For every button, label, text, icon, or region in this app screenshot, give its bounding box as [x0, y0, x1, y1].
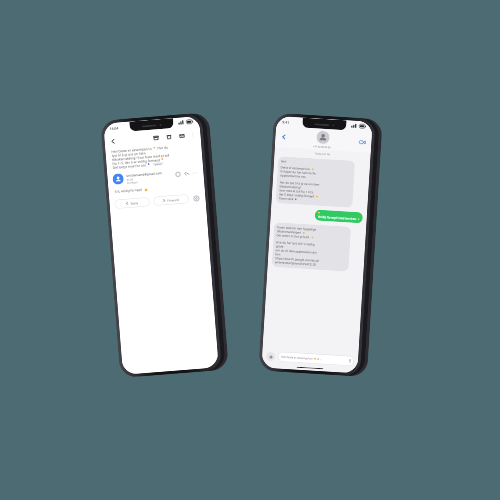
button[interactable]: Delete: [164, 132, 173, 141]
staticText: Det betyr mye for oss: [113, 162, 147, 169]
button[interactable]: Add reaction: [174, 171, 182, 178]
staticText: Tusen takk: [279, 196, 294, 201]
staticText: lyst til å gi oss en liten: [112, 150, 146, 157]
staticText: tilbakemeldingen!: [277, 229, 302, 235]
staticText: Reply: [130, 201, 139, 206]
staticText: her:: [275, 252, 281, 257]
staticText: Hvis du har lyst, blir vi veldig: [276, 240, 315, 247]
staticText: Forward: [167, 198, 180, 203]
staticText: Inbox: [154, 162, 162, 166]
staticText: 5/5, veldig fornøyd: [114, 188, 143, 194]
staticText: Har du lyst til å gi oss en liten: [280, 180, 320, 187]
staticText: Har du: [157, 144, 168, 149]
staticText: Tusen takk for den hyggelige: [277, 225, 317, 232]
button[interactable]: Hei!: [275, 156, 355, 208]
staticText: tilbakemelding?: [279, 184, 302, 190]
staticText: fra 1–5, der 5 er veldig fornøyd: [112, 157, 160, 165]
staticText: Today 9:41 PM: [314, 152, 331, 156]
staticText: to meg ∨: [127, 180, 138, 184]
staticText: Det setter vi stor pris på.: [276, 233, 311, 239]
button[interactable]: Forward: [153, 194, 189, 206]
staticText: writereview?placeid=PLACE_ID: [275, 260, 317, 267]
staticText: 9:41: [282, 119, 290, 125]
button[interactable]: Reply: [114, 197, 150, 209]
button[interactable]: Video call: [357, 137, 368, 148]
staticText: https://search.google.com/local/: [275, 256, 320, 263]
staticText: der 5 betyr veldig fornøyd: [279, 192, 315, 198]
staticText: Dette er eksempel.no: [280, 165, 311, 171]
staticText: tilbakemelding? Svar bare med et tall: [112, 152, 170, 161]
staticText: Vi …: [317, 357, 322, 361]
staticText: Veldig fornøyd med servicen: [318, 215, 357, 221]
button[interactable]: Add attachment: [266, 352, 275, 361]
staticText: Svar med et tall fra 1 til 5,: [279, 188, 314, 194]
staticText: kristiansand@gmail.com: [126, 171, 162, 178]
staticText: Vi håper du har hatt en fin: [280, 169, 316, 175]
staticText: +47 40 00 00 00: [313, 144, 331, 148]
staticText: om du vil dele opplevelsen din: [275, 248, 318, 255]
button[interactable]: Hei! Dette er eksempel.no: [278, 351, 354, 366]
staticText: Hei! Dette er eksempel.no: [111, 146, 152, 153]
staticText: 16:04: [109, 125, 119, 131]
button[interactable]: Archive: [151, 133, 160, 142]
staticText: Hei!: [281, 159, 287, 164]
button[interactable]: Back: [108, 137, 117, 145]
button[interactable]: Mark unread: [177, 131, 186, 140]
staticText: Hei! Dette er eksempel.no: [281, 355, 313, 361]
button[interactable]: Settings: [191, 193, 201, 203]
button[interactable]: Back: [279, 132, 289, 142]
staticText: glade: [276, 244, 284, 249]
staticText: opplevelse hos oss.: [280, 173, 307, 179]
button[interactable]: Tusen takk for den hyggelige: [272, 222, 351, 272]
button[interactable]: Reply: [183, 170, 191, 177]
staticText: 21:20: [127, 177, 134, 181]
button[interactable]: Veldig fornøyd med servicen: [314, 209, 363, 223]
